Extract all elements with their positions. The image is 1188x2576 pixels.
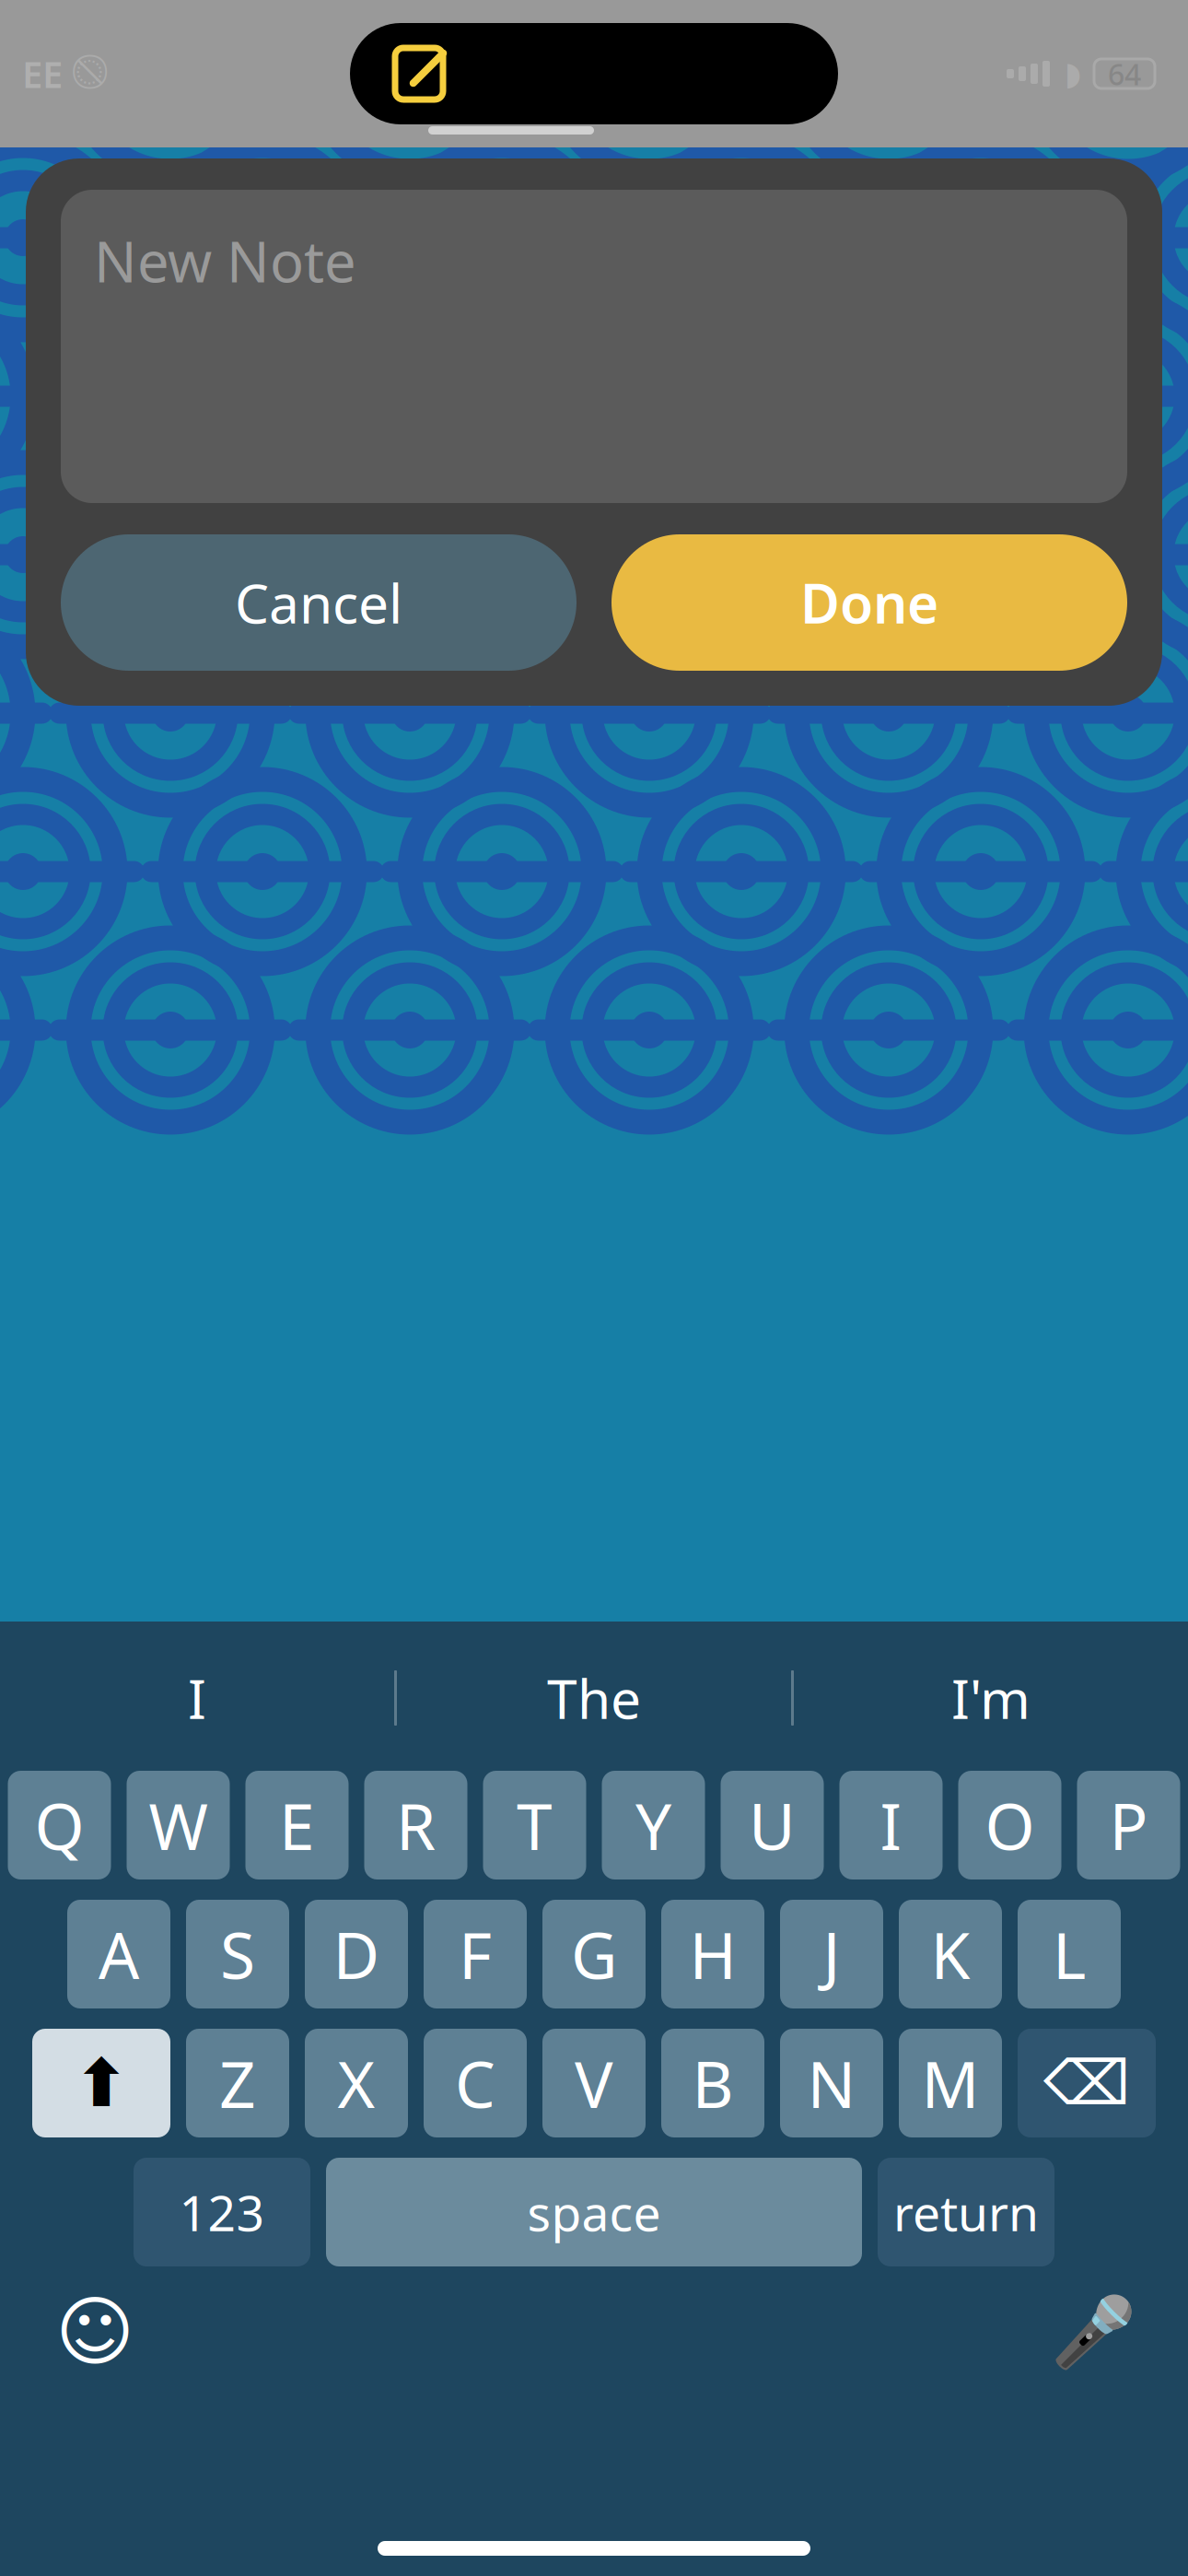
staticText: ⃠ — [76, 57, 103, 90]
staticText: return — [893, 2179, 1039, 2245]
staticText: M — [921, 2041, 979, 2126]
button[interactable]: M — [899, 2029, 1002, 2137]
staticText: ◗ — [1065, 56, 1081, 92]
staticText: Cancel — [235, 567, 402, 638]
button[interactable]: A — [67, 1900, 170, 2008]
staticText: Q — [35, 1783, 84, 1868]
button[interactable]: I'm — [794, 1646, 1188, 1750]
staticText: space — [527, 2179, 661, 2245]
button[interactable]: I — [839, 1771, 943, 1879]
button[interactable]: Shift — [32, 2029, 170, 2137]
staticText: W — [149, 1783, 208, 1868]
button[interactable]: K — [899, 1900, 1002, 2008]
staticText: 123 — [179, 2179, 265, 2245]
button[interactable]: I — [0, 1646, 394, 1750]
staticText: F — [459, 1912, 492, 1997]
button[interactable]: Q — [8, 1771, 111, 1879]
staticText: I — [880, 1783, 902, 1868]
staticText: P — [1109, 1783, 1148, 1868]
staticText: V — [575, 2041, 613, 2126]
staticText: ☺ — [55, 2289, 134, 2375]
button[interactable]: Z — [186, 2029, 289, 2137]
staticText: ⌫ — [1043, 2048, 1130, 2118]
staticText: I'm — [951, 1662, 1031, 1734]
button[interactable]: F — [424, 1900, 527, 2008]
staticText: D — [333, 1912, 380, 1997]
staticText: Y — [635, 1783, 671, 1868]
staticText: K — [931, 1912, 970, 1997]
button[interactable]: N — [780, 2029, 883, 2137]
staticText: EE — [22, 49, 63, 98]
button[interactable]: G — [542, 1900, 646, 2008]
staticText: C — [455, 2041, 495, 2126]
staticText: 🎤 — [1050, 2293, 1136, 2371]
staticText: L — [1053, 1912, 1086, 1997]
staticText: Done — [800, 567, 938, 638]
button[interactable]: S — [186, 1900, 289, 2008]
staticText: X — [338, 2041, 375, 2126]
staticText: 64 — [1108, 54, 1141, 93]
button[interactable]: D — [305, 1900, 408, 2008]
button[interactable]: Delete — [1018, 2029, 1156, 2137]
button[interactable]: Dictation — [1052, 2290, 1135, 2373]
staticText: O — [985, 1783, 1035, 1868]
staticText: B — [692, 2041, 734, 2126]
button[interactable]: O — [958, 1771, 1061, 1879]
staticText: U — [749, 1783, 796, 1868]
button[interactable]: U — [721, 1771, 824, 1879]
staticText: R — [396, 1783, 436, 1868]
button[interactable]: Cancel — [61, 534, 577, 671]
button[interactable]: R — [364, 1771, 467, 1879]
staticText: ⬆ — [74, 2045, 129, 2121]
button[interactable]: Done — [611, 534, 1127, 671]
staticText: New Note — [94, 223, 356, 298]
button[interactable]: E — [245, 1771, 349, 1879]
staticText: J — [823, 1912, 840, 1997]
staticText: Z — [219, 2041, 256, 2126]
button[interactable]: space — [326, 2158, 862, 2266]
button[interactable]: B — [661, 2029, 764, 2137]
staticText: A — [99, 1912, 139, 1997]
button[interactable]: V — [542, 2029, 646, 2137]
staticText: N — [807, 2041, 856, 2126]
staticText: I — [188, 1662, 206, 1734]
staticText: G — [571, 1912, 617, 1997]
button[interactable]: W — [127, 1771, 230, 1879]
button[interactable]: T — [483, 1771, 586, 1879]
button[interactable]: Y — [602, 1771, 705, 1879]
button[interactable]: Emoji — [53, 2290, 136, 2373]
button[interactable]: 123 — [134, 2158, 310, 2266]
button[interactable]: J — [780, 1900, 883, 2008]
button[interactable]: X — [305, 2029, 408, 2137]
staticText: The — [547, 1662, 641, 1734]
button[interactable]: P — [1077, 1771, 1180, 1879]
button[interactable]: The — [397, 1646, 791, 1750]
button[interactable]: return — [878, 2158, 1054, 2266]
button[interactable]: H — [661, 1900, 764, 2008]
button[interactable]: C — [424, 2029, 527, 2137]
staticText: E — [279, 1783, 315, 1868]
staticText: T — [517, 1783, 553, 1868]
staticText: S — [220, 1912, 255, 1997]
staticText: H — [689, 1912, 736, 1997]
button[interactable]: L — [1018, 1900, 1121, 2008]
